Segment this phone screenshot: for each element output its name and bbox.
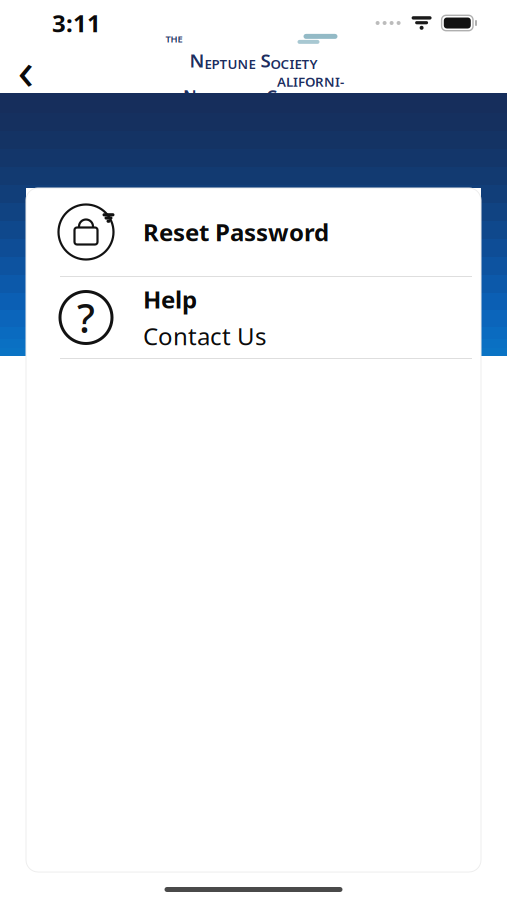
staticText: ORTHERN (197, 90, 261, 108)
staticText: ‹ (17, 34, 34, 104)
staticText: OCIETY (270, 55, 317, 73)
staticText: ALIFORNIA (277, 73, 344, 108)
staticText: Help (143, 283, 197, 315)
staticText: O (163, 90, 173, 108)
button[interactable]: Reset Password (26, 188, 481, 276)
staticText: Contact Us (143, 320, 266, 352)
staticText: N (189, 48, 204, 73)
staticText: N (183, 85, 197, 108)
staticText: THE (165, 33, 182, 45)
button[interactable]: ? (26, 277, 481, 358)
staticText: 3:11 (52, 7, 101, 39)
button[interactable]: Back (4, 47, 48, 91)
staticText: S (260, 48, 270, 73)
staticText: C (266, 85, 277, 108)
staticText: Reset Password (143, 216, 329, 248)
staticText: ? (77, 291, 95, 344)
staticText: EPTUNE (204, 55, 255, 73)
